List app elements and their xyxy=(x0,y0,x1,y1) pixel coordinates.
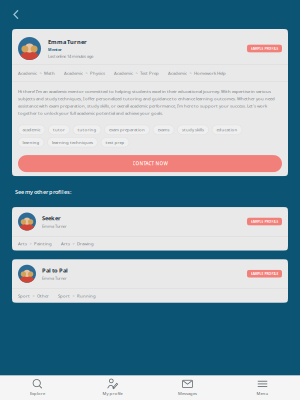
staticText: SAMPLE PROFILE xyxy=(250,219,278,224)
staticText: Explore xyxy=(30,391,45,396)
staticText: academic xyxy=(22,127,40,133)
staticText: study skills xyxy=(182,127,204,133)
staticText: > xyxy=(72,241,74,246)
staticText: exams xyxy=(157,127,169,133)
staticText: Hi there! I'm an academic mentor committ… xyxy=(18,88,271,94)
staticText: > xyxy=(189,70,191,76)
staticText: CONTACT NOW xyxy=(132,161,167,167)
staticText: subjects and study techniques, I offer p… xyxy=(18,96,275,101)
button[interactable]: Pal to Pal xyxy=(12,259,288,303)
staticText: Academic xyxy=(168,70,187,76)
staticText: > xyxy=(85,70,87,76)
staticText: Test Prep xyxy=(140,70,159,76)
button[interactable]: CONTACT NOW xyxy=(18,155,282,172)
staticText: Emma Turner xyxy=(42,276,67,281)
staticText: Mentor xyxy=(48,47,62,52)
staticText: assistance with exam preparation, study … xyxy=(18,103,267,109)
staticText: exam preparation xyxy=(109,127,145,133)
staticText: Math xyxy=(44,70,55,76)
staticText: > xyxy=(32,293,34,298)
staticText: SAMPLE PROFILE xyxy=(250,46,278,51)
staticText: Academic xyxy=(114,70,133,76)
button[interactable]: Menu xyxy=(225,375,300,400)
staticText: Arts xyxy=(18,241,27,246)
staticText: together to unlock your full academic po… xyxy=(18,110,163,116)
staticText: learning xyxy=(22,139,39,145)
staticText: education xyxy=(216,127,237,133)
staticText: Academic xyxy=(18,70,37,76)
staticText: Emma Turner xyxy=(48,38,87,46)
button[interactable]: Explore xyxy=(0,375,75,400)
staticText: Sport xyxy=(18,293,30,299)
staticText: Messages xyxy=(178,391,197,396)
staticText: See my other profiles: xyxy=(15,188,72,195)
staticText: My profile xyxy=(102,391,122,396)
staticText: Academic xyxy=(64,70,83,76)
staticText: SAMPLE PROFILE xyxy=(250,271,278,276)
staticText: > xyxy=(72,293,74,298)
button[interactable]: Back xyxy=(0,3,27,25)
staticText: Sport xyxy=(58,293,70,299)
staticText: > xyxy=(29,241,31,246)
staticText: Other xyxy=(37,293,49,299)
staticText: > xyxy=(135,70,137,76)
staticText: Drawing xyxy=(77,241,94,246)
staticText: Seeker xyxy=(42,214,61,222)
staticText: test prep xyxy=(105,139,124,145)
button[interactable]: Seeker xyxy=(12,207,288,250)
staticText: Last online 14 minutes ago xyxy=(48,54,93,59)
staticText: tutoring xyxy=(77,127,96,133)
staticText: Pal to Pal xyxy=(42,266,68,274)
button[interactable]: Messages xyxy=(150,375,225,400)
staticText: > xyxy=(39,70,41,76)
staticText: Menu xyxy=(256,391,268,396)
button[interactable]: My profile xyxy=(75,375,150,400)
staticText: tutor xyxy=(53,127,65,133)
staticText: Arts xyxy=(61,241,70,246)
staticText: Physics xyxy=(90,70,105,76)
staticText: Emma Turner xyxy=(42,223,67,229)
staticText: Painting xyxy=(34,241,52,246)
staticText: Running xyxy=(77,293,96,299)
staticText: Homework Help xyxy=(194,70,226,76)
staticText: learning techniques xyxy=(52,139,93,145)
